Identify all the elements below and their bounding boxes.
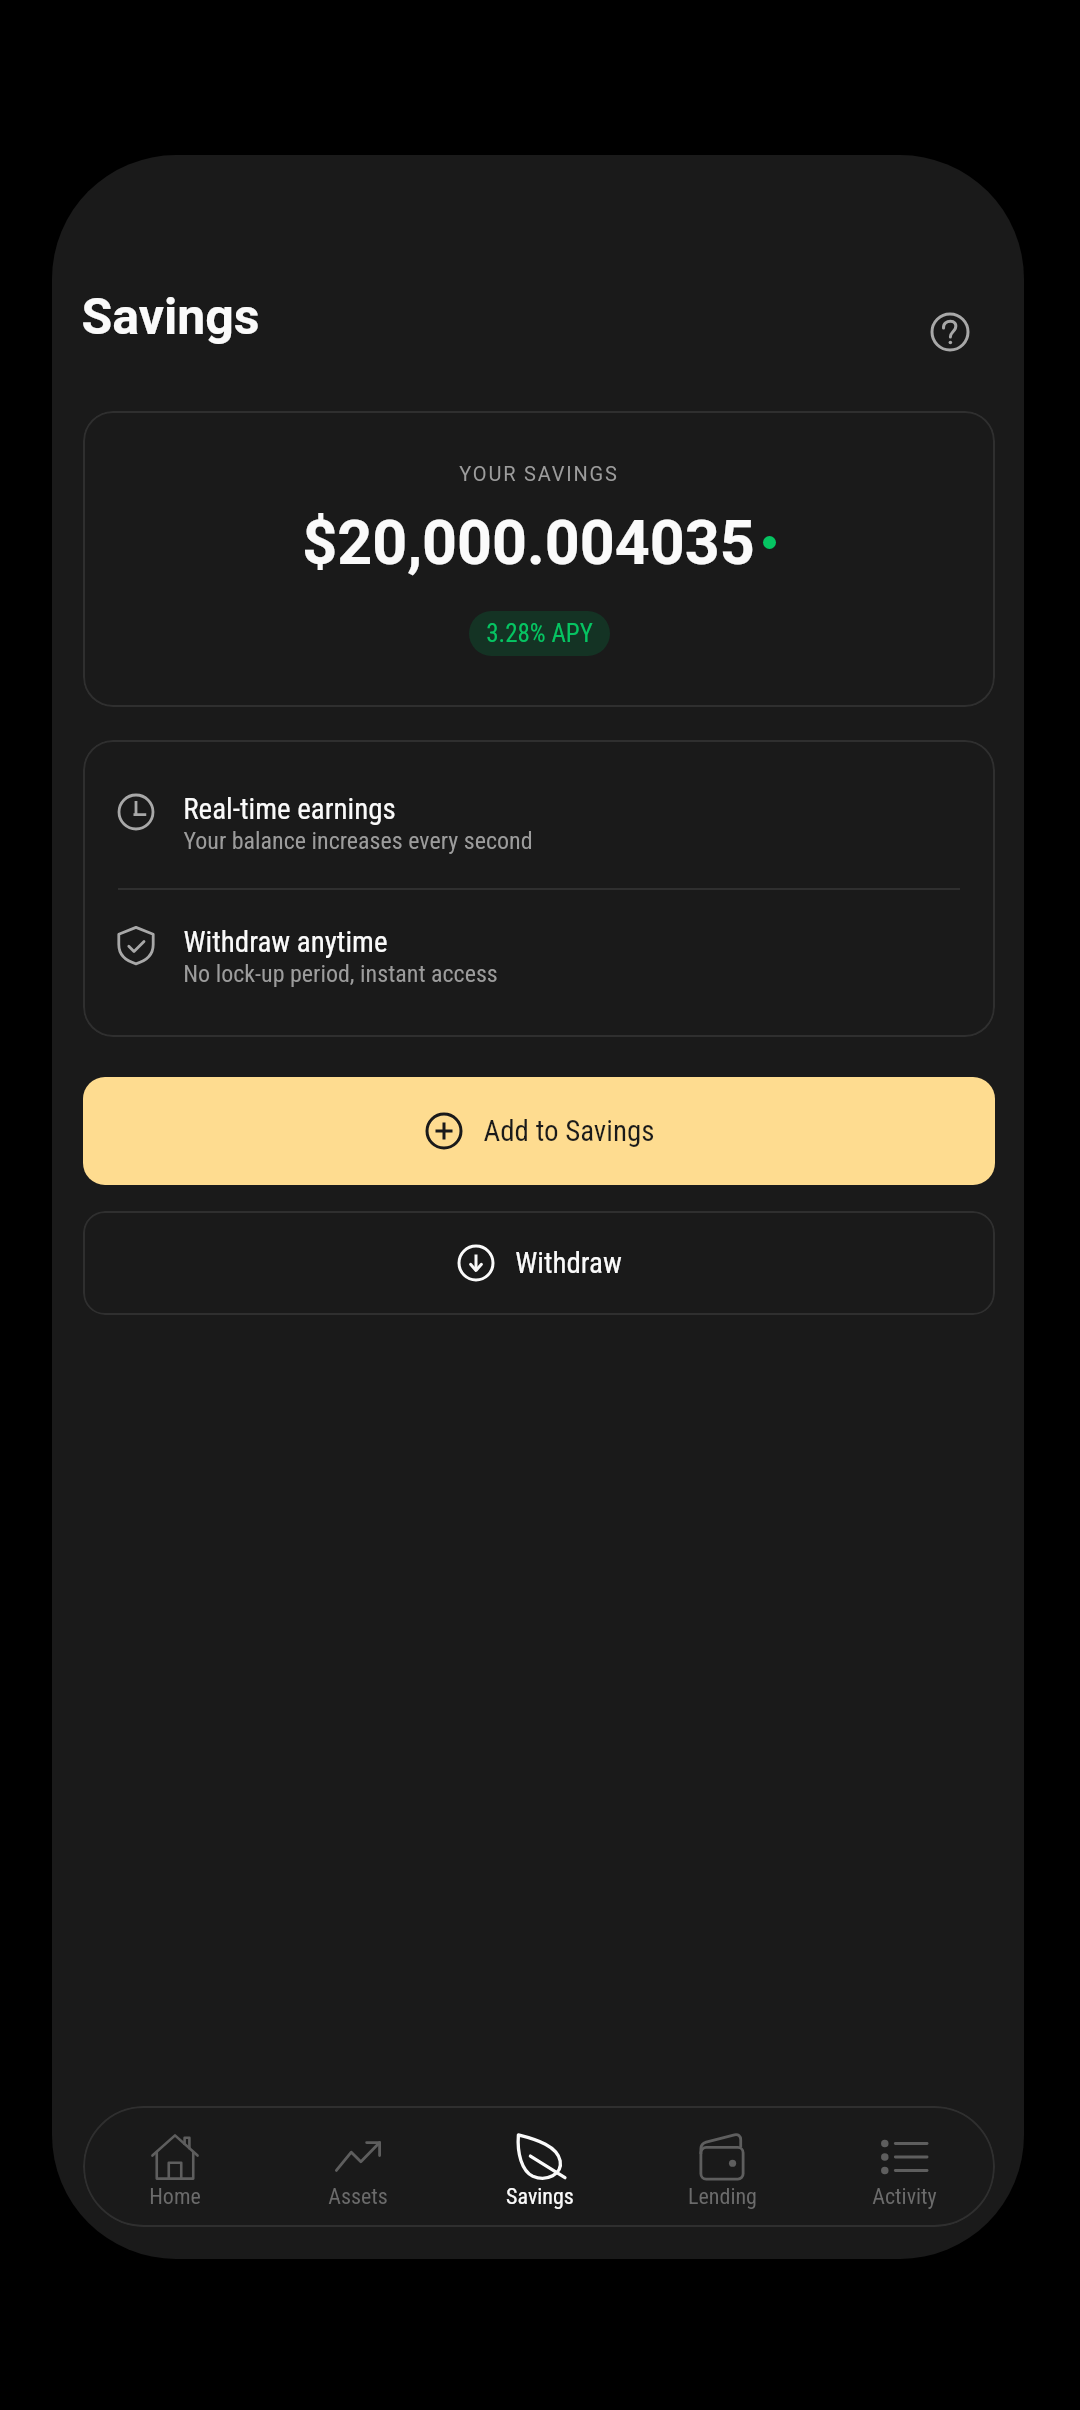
button[interactable]: Savings [449,2123,631,2210]
staticText: YOUR SAVINGS [459,462,619,485]
button[interactable]: Add to Savings [83,1077,995,1185]
staticText: Assets [328,2184,388,2210]
button[interactable]: Real-time earnings [83,777,995,847]
staticText: Add to Savings [483,1114,655,1148]
staticText: $20,000.004035 [302,507,755,578]
staticText: 3.28% APY [486,619,593,648]
staticText: Home [149,2184,201,2210]
staticText: Withdraw anytime [183,925,388,959]
button[interactable]: Assets [266,2123,449,2210]
staticText: Real-time earnings [183,792,396,826]
staticText: Savings [81,288,260,347]
button[interactable]: Home [83,2123,266,2210]
button[interactable]: Help [920,302,980,362]
staticText: Your balance increases every second [183,827,533,855]
staticText: Savings [506,2184,574,2210]
button[interactable]: Lending [631,2123,813,2210]
staticText: Activity [872,2184,937,2210]
button[interactable]: Withdraw [83,1211,995,1315]
staticText: Lending [688,2184,757,2210]
button[interactable]: Withdraw anytime [83,910,995,980]
staticText: No lock-up period, instant access [183,960,498,988]
button[interactable]: Activity [813,2123,995,2210]
staticText: Withdraw [515,1246,622,1280]
